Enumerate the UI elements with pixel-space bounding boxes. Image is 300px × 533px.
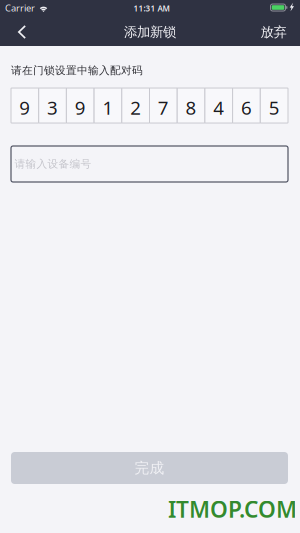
staticText: 请输入设备编号 <box>14 157 91 170</box>
button[interactable]: Back <box>9 18 35 46</box>
staticText: ITMOP.COM <box>168 494 297 524</box>
staticText: 放弃 <box>260 24 286 40</box>
staticText: 4 <box>213 95 224 120</box>
staticText: 完成 <box>134 459 164 477</box>
staticText: 9 <box>19 95 30 120</box>
button[interactable]: 放弃 <box>255 18 291 46</box>
staticText: 请在门锁设置中输入配对码 <box>11 64 143 77</box>
staticText: 11:31 AM <box>133 3 169 14</box>
staticText: 5 <box>269 95 280 120</box>
staticText: 1 <box>102 95 113 120</box>
staticText: 9 <box>75 95 86 120</box>
staticText: Carrier <box>5 2 35 14</box>
staticText: 2 <box>130 95 141 120</box>
staticText: 添加新锁 <box>124 24 176 40</box>
button[interactable]: 完成 <box>11 452 288 484</box>
staticText: 3 <box>47 95 58 120</box>
staticText: 7 <box>158 95 169 120</box>
staticText: 8 <box>185 95 196 120</box>
staticText: 6 <box>241 95 252 120</box>
